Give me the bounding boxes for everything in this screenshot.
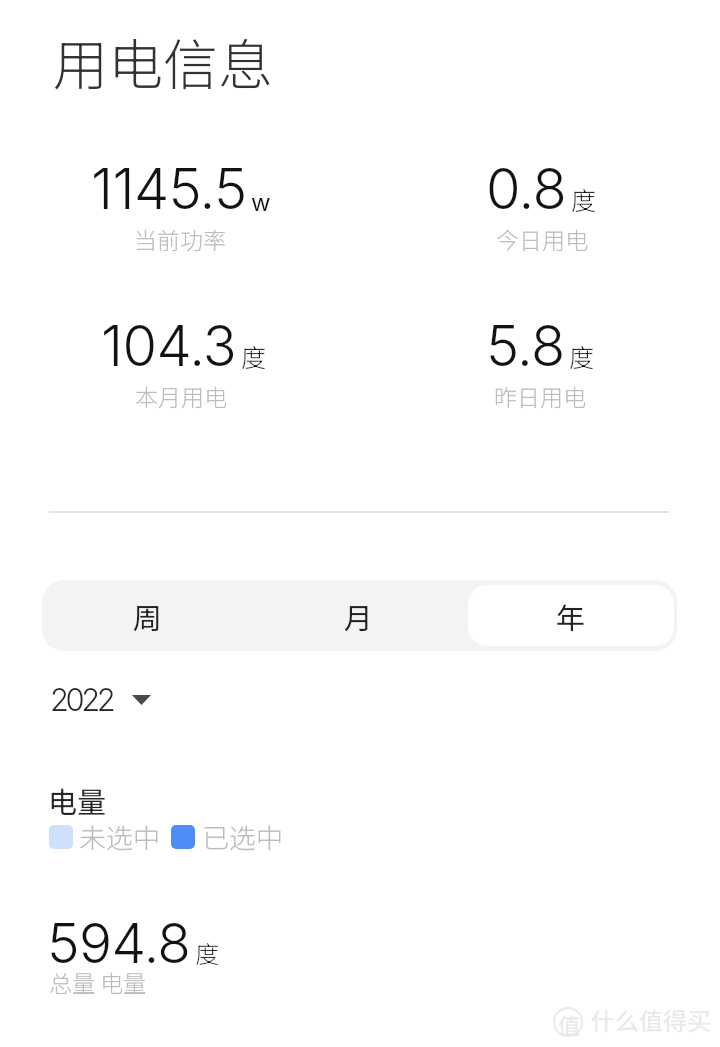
staticText: 什么值得买	[591, 1002, 711, 1037]
staticText: 度	[571, 181, 597, 217]
staticText: w	[251, 188, 271, 217]
staticText: 594.8	[47, 910, 191, 977]
staticText: 度	[569, 338, 595, 374]
staticText: 年	[556, 595, 586, 637]
staticText: 昨日用电	[494, 379, 586, 412]
staticText: 104.3	[101, 312, 237, 380]
staticText: 周	[133, 595, 163, 637]
button[interactable]: 月	[253, 580, 465, 651]
staticText: 用电信息	[53, 21, 274, 101]
staticText: 度	[241, 338, 267, 374]
staticText: 今日用电	[496, 222, 588, 255]
staticText: 2022	[50, 681, 113, 719]
staticText: 总量 电量	[49, 965, 147, 998]
staticText: 1145.5	[91, 155, 247, 223]
staticText: 值	[558, 1008, 581, 1040]
button[interactable]: 年	[468, 585, 674, 646]
staticText: 电量	[48, 779, 107, 821]
staticText: 未选中	[79, 817, 160, 856]
staticText: 本月用电	[135, 379, 227, 412]
staticText: 已选中	[202, 817, 283, 856]
staticText: 月	[344, 595, 374, 637]
staticText: 5.8	[486, 312, 565, 380]
button[interactable]: 2022	[50, 681, 151, 719]
staticText: 度	[195, 935, 219, 970]
button[interactable]: 周	[42, 580, 253, 651]
staticText: 当前功率	[134, 222, 226, 255]
staticText: 0.8	[486, 155, 567, 223]
